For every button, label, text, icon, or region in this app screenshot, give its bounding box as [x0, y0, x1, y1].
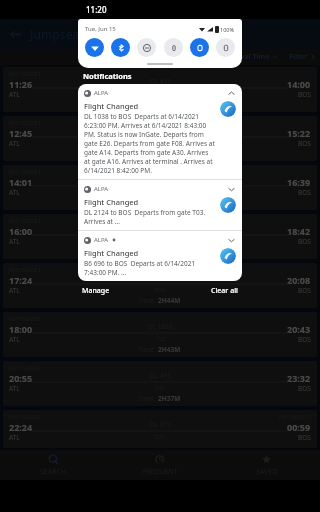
- staticText: 739: [155, 139, 166, 147]
- button[interactable]: Expand: [226, 184, 236, 194]
- button[interactable]: ALPA: [78, 231, 242, 281]
- button[interactable]: 06/15/2021: [3, 312, 317, 357]
- staticText: 20:43: [287, 323, 311, 335]
- staticText: DL 1038 to BOS Departs at 6/14/2021 6:23…: [84, 112, 216, 175]
- button[interactable]: 06/15/2021: [3, 67, 317, 112]
- staticText: Jumpseat Flights: [30, 26, 126, 42]
- button[interactable]: 06/15/2021: [3, 410, 317, 448]
- button[interactable]: Expand: [226, 235, 236, 245]
- staticText: BOS: [298, 188, 311, 197]
- staticText: ATL: [9, 188, 20, 197]
- button[interactable]: 06/15/2021: [3, 361, 317, 406]
- staticText: 2H44M: [158, 296, 181, 305]
- staticText: DL 1166: [148, 126, 173, 135]
- staticText: ALPA: [94, 89, 109, 97]
- staticText: Tue, Jun 15: [85, 25, 116, 33]
- button[interactable]: Collapse: [226, 88, 236, 98]
- staticText: 20:08: [287, 274, 311, 286]
- button[interactable]: Wi-Fi: [85, 38, 104, 57]
- staticText: SAVED: [256, 467, 278, 477]
- staticText: 18:42: [287, 225, 311, 237]
- staticText: DL 411: [150, 77, 171, 86]
- staticText: 11:26: [9, 78, 33, 90]
- button[interactable]: Battery Saver: [216, 38, 235, 57]
- button[interactable]: Clear all: [211, 286, 238, 296]
- button[interactable]: 06/15/2021: [3, 165, 317, 210]
- staticText: 00:59: [287, 421, 311, 433]
- button[interactable]: Filter: [289, 52, 320, 62]
- staticText: 16:39: [287, 176, 311, 188]
- staticText: BOS: [298, 335, 311, 344]
- staticText: FREQUENT: [142, 467, 178, 477]
- button[interactable]: Do Not Disturb: [137, 38, 156, 57]
- button[interactable]: 06/15/2021: [3, 116, 317, 161]
- staticText: ATL: [9, 286, 20, 295]
- staticText: BOS: [298, 286, 311, 295]
- button[interactable]: SEARCH: [0, 450, 106, 480]
- staticText: Flight Changed: [84, 197, 139, 207]
- staticText: B6 696: [150, 224, 171, 233]
- staticText: 100%: [220, 26, 235, 33]
- staticText: 2H37M: [158, 394, 181, 403]
- staticText: 12:45: [9, 127, 33, 139]
- button[interactable]: ALPA: [78, 84, 242, 179]
- button[interactable]: Manage: [82, 286, 110, 296]
- staticText: 14:01: [9, 176, 33, 188]
- staticText: Flight Changed: [84, 248, 139, 258]
- staticText: BOS: [298, 237, 311, 246]
- staticText: B6 596: [150, 273, 171, 282]
- staticText: Filter: [289, 52, 308, 62]
- button[interactable]: ALPA: [78, 180, 242, 230]
- staticText: BOS: [298, 384, 311, 393]
- button[interactable]: 06/15/2021: [3, 214, 317, 259]
- staticText: ATL: [9, 433, 20, 442]
- staticText: ATL: [9, 335, 20, 344]
- staticText: 14:00: [287, 78, 311, 90]
- staticText: Total:: [139, 149, 158, 158]
- button[interactable]: Sort: Arrival Time: [206, 52, 281, 62]
- staticText: DL 2124: [148, 175, 173, 184]
- button[interactable]: Auto-rotate: [190, 38, 209, 57]
- staticText: 11:20: [86, 4, 107, 15]
- button[interactable]: Flashlight: [164, 38, 183, 57]
- staticText: BOS: [298, 139, 311, 148]
- staticText: ATL: [9, 90, 20, 99]
- staticText: 2H37M: [158, 149, 181, 158]
- staticText: Notifications: [83, 71, 132, 81]
- button[interactable]: Bluetooth: [111, 38, 130, 57]
- staticText: 2H43M: [158, 345, 181, 354]
- staticText: B6 696 to BOS Departs at 6/14/2021 7:43:…: [84, 259, 216, 277]
- staticText: Clear all: [211, 286, 238, 296]
- staticText: Sort: Arrival Time: [209, 52, 270, 62]
- staticText: ATL: [9, 384, 20, 393]
- staticText: BOS: [298, 433, 311, 442]
- staticText: 22:24: [9, 421, 33, 433]
- button[interactable]: 06/15/2021: [3, 263, 317, 308]
- staticText: 23:32: [287, 372, 311, 384]
- staticText: ALPA: [94, 185, 109, 193]
- staticText: 17:24: [9, 274, 33, 286]
